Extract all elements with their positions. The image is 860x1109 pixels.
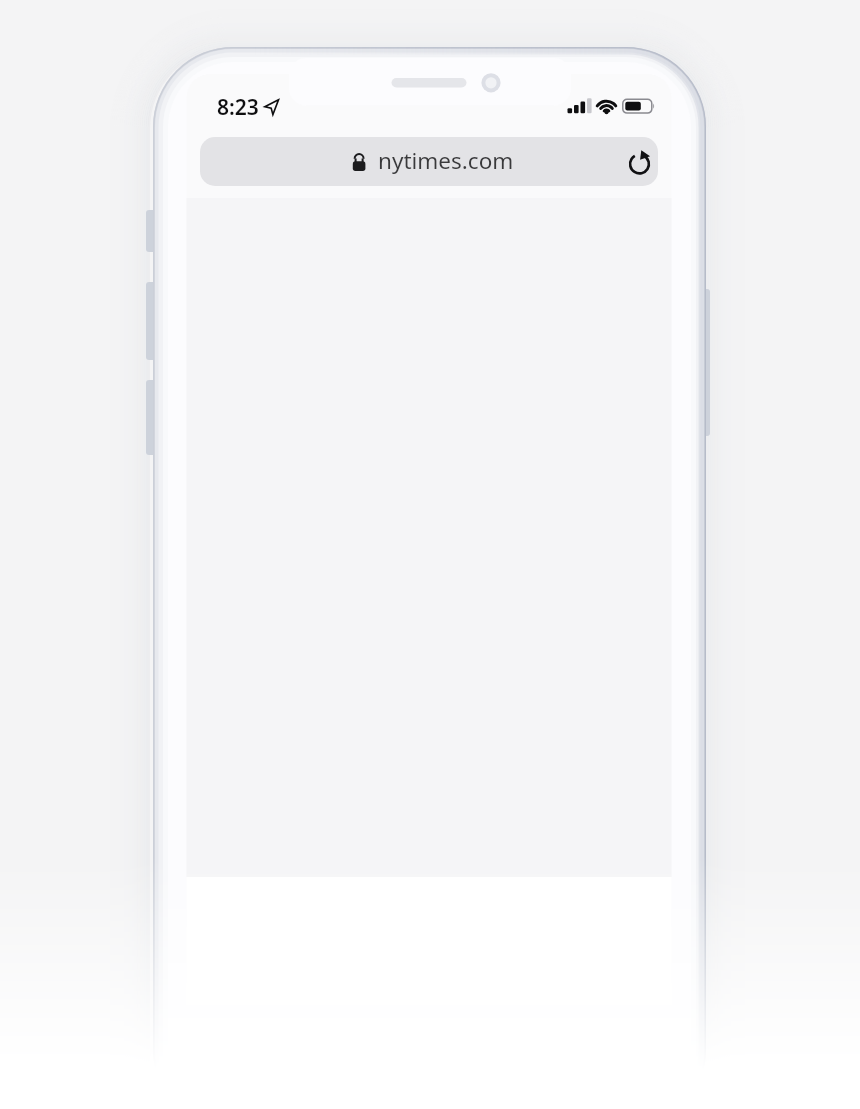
staticText: nytimes.com xyxy=(378,145,514,176)
button[interactable] xyxy=(200,137,658,186)
staticText: 8:23 xyxy=(217,93,259,122)
button[interactable] xyxy=(623,148,655,180)
